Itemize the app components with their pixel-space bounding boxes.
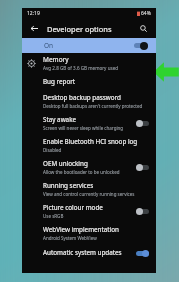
staticText: Enable Bluetooth HCI snoop log — [43, 137, 138, 146]
button[interactable]: Running services — [22, 178, 156, 200]
staticText: On — [44, 41, 54, 50]
staticText: Allow the bootloader to be unlocked — [43, 169, 120, 175]
button[interactable]: Picture colour mode — [22, 200, 156, 222]
button[interactable]: Desktop backup password — [22, 90, 156, 112]
staticText: Use sRGB — [43, 213, 64, 219]
staticText: WebView implementation — [43, 225, 119, 234]
button[interactable]: Enable Bluetooth HCI snoop log — [22, 134, 156, 156]
staticText: Memory — [43, 55, 69, 64]
button[interactable]: WebView implementation — [22, 222, 156, 244]
staticText: Desktop full backups aren't currently pr… — [43, 103, 143, 109]
staticText: Desktop backup password — [43, 93, 121, 102]
staticText: Stay awake — [43, 115, 77, 124]
button[interactable]: On — [22, 38, 156, 53]
button[interactable]: Search — [137, 22, 150, 35]
staticText: 64% — [141, 10, 151, 17]
staticText: Disabled — [43, 147, 62, 153]
other: Pointer arrow — [153, 61, 179, 83]
staticText: View and control currently running servi… — [43, 191, 135, 197]
staticText: Android System WebView — [43, 235, 97, 241]
button[interactable]: Switch on — [136, 249, 149, 257]
button[interactable]: Back — [28, 22, 41, 35]
button[interactable]: Automatic system updates — [22, 244, 156, 261]
staticText: Bug report — [43, 77, 76, 86]
staticText: OEM unlocking — [43, 159, 88, 168]
button[interactable]: Switch off — [136, 163, 149, 171]
button[interactable]: Switch off — [136, 207, 149, 215]
button[interactable]: OEM unlocking — [22, 156, 156, 178]
staticText: Running services — [43, 181, 94, 190]
button[interactable]: Bug report — [22, 73, 156, 90]
staticText: Developer options — [47, 24, 112, 34]
button[interactable]: Stay awake — [22, 112, 156, 134]
staticText: Automatic system updates — [43, 248, 122, 257]
staticText: Screen will never sleep while charging — [43, 125, 124, 131]
staticText: Picture colour mode — [43, 203, 103, 212]
staticText: 12:19 — [27, 10, 40, 17]
button[interactable]: Switch off — [136, 119, 149, 127]
button[interactable]: Memory — [22, 53, 156, 73]
staticText: Avg 2.8 GB of 3.6 GB memory used — [43, 65, 119, 71]
